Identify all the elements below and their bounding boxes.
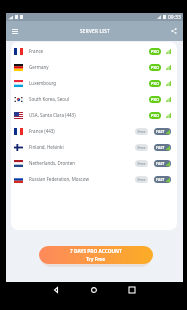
staticText: Luxembourg [29, 80, 149, 86]
button[interactable]: Germany [11, 59, 177, 75]
button[interactable]: Menu [8, 24, 22, 38]
button[interactable]: Back [49, 283, 63, 297]
staticText: South Korea, Seoul [29, 96, 149, 102]
staticText: PRO [151, 97, 159, 102]
staticText: PRO [151, 113, 159, 118]
staticText: France [29, 48, 149, 54]
staticText: PRO [151, 81, 159, 86]
staticText: FAST [156, 161, 165, 166]
staticText: FAST [156, 145, 165, 150]
staticText: France (443) [29, 128, 135, 134]
button[interactable]: Recents [125, 283, 139, 297]
staticText: PRO [151, 65, 159, 70]
button[interactable]: Share [167, 24, 181, 38]
staticText: 7 DAYS PRO ACCOUNT [70, 248, 122, 255]
button[interactable]: USA, Santa Clara (443) [11, 107, 177, 123]
staticText: Germany [29, 64, 149, 70]
staticText: PRO [151, 49, 159, 54]
button[interactable]: Finland, Helsinki [11, 139, 177, 155]
button[interactable]: Luxembourg [11, 75, 177, 91]
button[interactable]: France [11, 43, 177, 59]
staticText: Free [137, 145, 146, 150]
button[interactable]: South Korea, Seoul [11, 91, 177, 107]
button[interactable]: Russian Federation, Moscow [11, 171, 177, 187]
staticText: Try Free [86, 256, 106, 263]
staticText: Netherlands, Dronten [29, 160, 135, 166]
button[interactable]: Netherlands, Dronten [11, 155, 177, 171]
staticText: USA, Santa Clara (443) [29, 112, 149, 118]
staticText: Free [137, 129, 146, 134]
button[interactable]: Home [87, 283, 101, 297]
staticText: Free [137, 161, 146, 166]
staticText: SERVER LIST [80, 28, 110, 34]
staticText: FAST [156, 177, 165, 182]
button[interactable]: 7 DAYS PRO ACCOUNT [39, 246, 153, 264]
staticText: Free [137, 177, 146, 182]
staticText: 09:33 [168, 14, 181, 21]
staticText: Russian Federation, Moscow [29, 176, 135, 182]
button[interactable]: France (443) [11, 123, 177, 139]
staticText: Finland, Helsinki [29, 144, 135, 150]
staticText: FAST [156, 129, 165, 134]
